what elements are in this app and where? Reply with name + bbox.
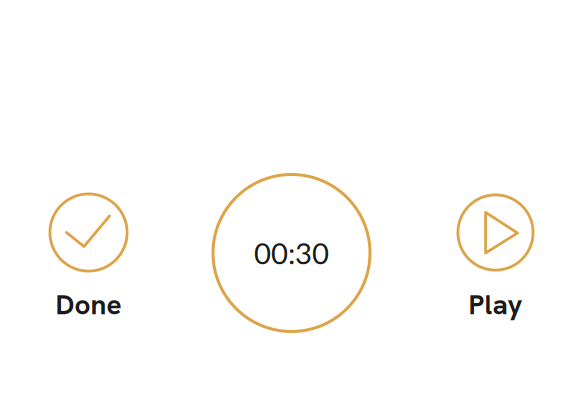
staticText: Done xyxy=(55,286,121,323)
button[interactable]: Done xyxy=(18,192,158,316)
staticText: Play xyxy=(468,286,522,323)
staticText: 00:30 xyxy=(254,235,329,271)
button[interactable]: 00:30 xyxy=(211,173,371,333)
button[interactable]: Play xyxy=(425,193,565,317)
